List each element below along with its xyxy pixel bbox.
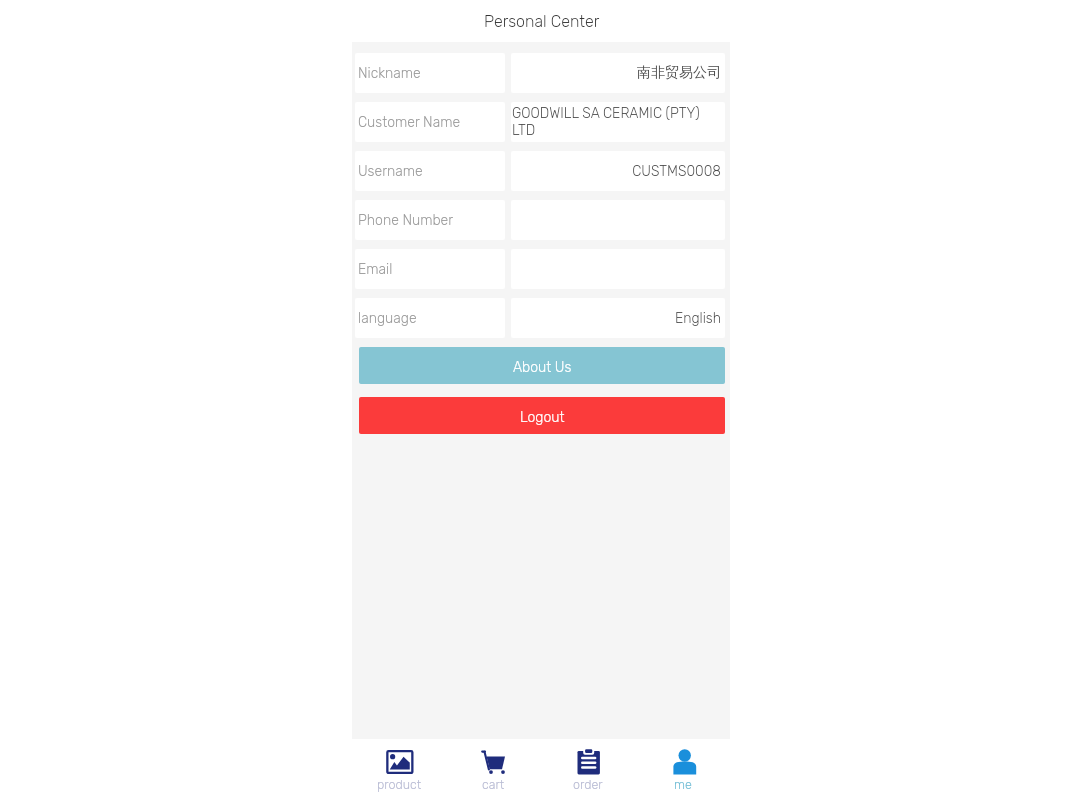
staticText: Logout [520,409,565,426]
staticText: language [358,310,417,327]
button[interactable]: cart [446,739,540,800]
staticText: 南非贸易公司 [637,64,721,82]
staticText: CUSTMS0008 [632,163,721,180]
button[interactable]: Logout [359,397,725,434]
button[interactable]: Email [355,249,725,289]
staticText: GOODWILL SA CERAMIC (PTY) LTD [512,105,721,139]
staticText: English [674,310,721,327]
button[interactable]: me [635,739,730,800]
button[interactable]: product [352,739,446,800]
button[interactable]: Customer Name [355,102,725,142]
button[interactable]: Phone Number [355,200,725,240]
staticText: Nickname [358,65,421,82]
staticText: Personal Center [484,12,600,31]
staticText: Phone Number [358,212,454,229]
staticText: Customer Name [358,114,461,131]
button[interactable]: Username [355,151,725,191]
button[interactable]: About Us [359,347,725,384]
staticText: Username [358,163,423,180]
staticText: me [674,777,692,792]
button[interactable]: language [355,298,725,338]
staticText: product [377,777,422,792]
staticText: Email [358,261,393,278]
button[interactable]: Nickname [355,53,725,93]
button[interactable]: order [540,739,635,800]
staticText: order [573,777,603,792]
staticText: cart [482,777,505,792]
staticText: About Us [513,359,572,376]
